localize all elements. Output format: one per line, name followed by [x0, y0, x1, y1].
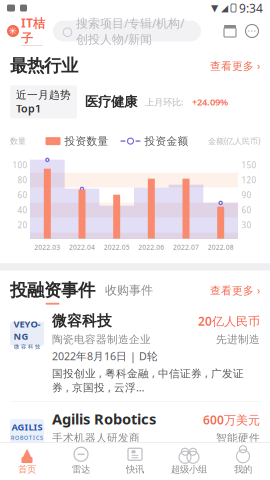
staticText: 雷达 [72, 464, 90, 475]
staticText: 2022.04 [69, 243, 95, 252]
staticText: ✳ [8, 25, 17, 37]
button[interactable]: ○ [53, 20, 201, 41]
staticText: 超级小组 [171, 464, 207, 475]
staticText: 20 [17, 220, 27, 230]
staticText: 2022.03 [34, 243, 60, 252]
staticText: 2022年8月16日 | D轮 [52, 349, 158, 363]
staticText: 90 [241, 190, 251, 200]
staticText: 手术机器人研发商 [52, 431, 140, 445]
staticText: 最热行业 [10, 55, 78, 76]
staticText: AGILIS [11, 421, 42, 433]
staticText: 2022.05 [104, 243, 130, 252]
staticText: 60 [17, 190, 27, 200]
staticText: 40 [17, 205, 27, 215]
button[interactable]: ▲ [0, 443, 54, 479]
staticText: 2022年8月16日 | A轮 [52, 448, 157, 462]
staticText: 医疗健康 [85, 94, 137, 110]
staticText: ▼ [211, 3, 218, 13]
button[interactable]: IT桔子 [7, 15, 53, 47]
staticText: 投资金额 [144, 135, 188, 148]
staticText: 搜索项目/专辑/机构/创投人物/新闻 [76, 15, 184, 47]
staticText: 投融资事件 [10, 279, 95, 301]
button[interactable]: 查看更多 [210, 283, 260, 301]
staticText: 上月环比: [145, 96, 184, 108]
staticText: ▲ [22, 445, 31, 459]
staticText: 2022.08 [208, 243, 234, 252]
staticText: IT桔子 [21, 15, 45, 46]
staticText: 150 [241, 160, 256, 170]
staticText: Agilis Robotics [52, 409, 156, 428]
staticText: 金额(亿人民币) [208, 136, 260, 146]
staticText: 微容科技 [52, 312, 112, 330]
button[interactable]: 快讯 [108, 443, 162, 479]
staticText: 80 [17, 175, 27, 185]
staticText: 智能硬件 [216, 431, 260, 445]
button[interactable]: 收购事件 [95, 283, 153, 301]
button[interactable]: AGILIS [0, 402, 270, 480]
staticText: 9:34 [239, 0, 263, 16]
staticText: 首页 [18, 464, 36, 475]
staticText: 600万美元 [203, 412, 260, 428]
button[interactable]: 查看更多 [210, 59, 260, 73]
staticText: VEYONG [13, 318, 40, 342]
button[interactable]: 投融资事件 [10, 279, 95, 301]
button[interactable]: 超级小组 [162, 443, 216, 479]
button[interactable]: 我的 [216, 443, 270, 479]
button[interactable]: 消息 [241, 20, 263, 42]
staticText: 陶瓷电容器制造企业 [52, 333, 151, 346]
staticText: 我的 [234, 464, 252, 475]
staticText: 20亿人民币 [198, 313, 260, 329]
staticText: 投资数量 [64, 135, 108, 148]
staticText: 查看更多 › [210, 283, 260, 297]
button[interactable]: 日历 [219, 20, 241, 42]
staticText: KIP韩投伙伴 , 险峰旗云 [52, 465, 166, 479]
staticText: 快讯 [126, 464, 144, 475]
staticText: 微 容 科 技 [14, 343, 40, 350]
staticText: 120 [241, 175, 256, 185]
staticText: 2022.06 [138, 243, 164, 252]
staticText: ○ [62, 24, 72, 38]
staticText: 收购事件 [105, 283, 153, 297]
staticText: R O B O T I C S [11, 434, 43, 441]
staticText: 60 [241, 205, 251, 215]
staticText: +24.09% [192, 96, 228, 108]
staticText: 30 [241, 220, 251, 230]
staticText: 2022.07 [173, 243, 199, 252]
staticText: 近一月趋势 Top1 [16, 88, 71, 116]
button[interactable]: VEYONG [0, 305, 270, 401]
staticText: ◢ [221, 3, 228, 13]
staticText: 数量 [10, 136, 26, 146]
staticText: 先进制造 [216, 333, 260, 346]
staticText: 100 [12, 160, 27, 170]
staticText: ··· [247, 25, 256, 37]
button[interactable]: 雷达 [54, 443, 108, 479]
staticText: 国投创业 , 粤科金融 , 中信证券 , 广发证券 , 京国投 , 云浮… [52, 366, 244, 394]
staticText: 查看更多 › [210, 59, 260, 73]
